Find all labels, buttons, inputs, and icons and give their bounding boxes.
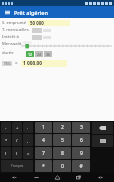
button[interactable]: 9 bbox=[72, 147, 90, 159]
button[interactable]: 8 bbox=[53, 147, 71, 159]
staticText: Prêt algérien bbox=[14, 9, 48, 16]
button[interactable]: = bbox=[23, 147, 33, 159]
button[interactable]: Français bbox=[1, 160, 33, 172]
staticText: 1 000.00 bbox=[23, 60, 43, 67]
staticText: 6 bbox=[80, 137, 83, 144]
staticText: 0 bbox=[61, 163, 64, 170]
staticText: S. emprunté bbox=[2, 20, 28, 26]
staticText: Intérêt à temps partiel bbox=[2, 34, 32, 40]
staticText: Français bbox=[11, 164, 24, 168]
button[interactable]: 1 bbox=[35, 122, 52, 133]
staticText: = bbox=[15, 60, 18, 66]
staticText: 12 bbox=[28, 52, 33, 57]
staticText: * bbox=[42, 163, 45, 170]
button[interactable]: 1 000.00 bbox=[21, 60, 67, 67]
staticText: + bbox=[16, 125, 19, 130]
staticText: - bbox=[5, 125, 7, 130]
button[interactable]: . bbox=[23, 122, 33, 133]
staticText: * bbox=[5, 138, 8, 143]
staticText: Mensualités bbox=[2, 41, 22, 49]
button[interactable]: Volume down bbox=[7, 173, 21, 182]
staticText: 4 bbox=[42, 137, 45, 144]
staticText: ) bbox=[16, 151, 18, 156]
staticText: # bbox=[79, 163, 83, 170]
staticText: ( bbox=[5, 151, 7, 156]
staticText: 50 000 bbox=[30, 20, 44, 26]
staticText: 7 bbox=[42, 150, 45, 157]
staticText: 3 bbox=[80, 124, 83, 131]
button[interactable]: - bbox=[1, 122, 11, 133]
button[interactable]: ( bbox=[1, 147, 11, 159]
staticText: T. mensuelles bbox=[2, 27, 32, 33]
button[interactable]: 7 bbox=[35, 147, 52, 159]
button[interactable]: * bbox=[35, 160, 52, 172]
staticText: . bbox=[27, 125, 29, 130]
button[interactable]: Menu bbox=[3, 8, 12, 17]
button[interactable]: Backspace bbox=[92, 122, 113, 134]
button[interactable]: 0 bbox=[53, 160, 71, 172]
staticText: , bbox=[27, 138, 29, 143]
button[interactable]: * bbox=[1, 134, 11, 146]
staticText: 5 bbox=[61, 137, 64, 144]
staticText: 36 bbox=[46, 52, 51, 57]
staticText: TEG bbox=[4, 61, 11, 66]
button[interactable]: # bbox=[72, 160, 90, 172]
button[interactable]: / bbox=[12, 134, 22, 146]
button[interactable]: Home bbox=[50, 173, 64, 182]
button[interactable]: Volume up bbox=[93, 173, 107, 182]
staticText: 8 bbox=[61, 150, 64, 157]
button[interactable]: Back bbox=[29, 173, 43, 182]
button[interactable]: ) bbox=[12, 147, 22, 159]
button[interactable]: 24 bbox=[35, 51, 43, 57]
button[interactable]: Slider bbox=[22, 41, 112, 49]
staticText: = bbox=[27, 151, 30, 156]
button[interactable]: 50 000 bbox=[28, 20, 70, 26]
button[interactable]: + bbox=[12, 122, 22, 133]
button[interactable]: 3 bbox=[72, 122, 90, 133]
staticText: 24 bbox=[37, 52, 42, 57]
button[interactable]: Enter bbox=[92, 135, 113, 147]
button[interactable]: 36 bbox=[44, 51, 52, 57]
button[interactable]: Recents bbox=[71, 173, 85, 182]
staticText: 2 bbox=[61, 124, 64, 131]
button[interactable]: 12 bbox=[26, 51, 34, 57]
button[interactable]: 6 bbox=[72, 134, 90, 146]
button[interactable]: 4 bbox=[35, 134, 52, 146]
staticText: 1 bbox=[42, 124, 45, 131]
staticText: durée contrat bbox=[2, 50, 26, 57]
button[interactable]: , bbox=[23, 134, 33, 146]
button[interactable]: 2 bbox=[53, 122, 71, 133]
button[interactable]: 5 bbox=[53, 134, 71, 146]
staticText: / bbox=[16, 138, 18, 143]
staticText: 9 bbox=[80, 150, 83, 157]
